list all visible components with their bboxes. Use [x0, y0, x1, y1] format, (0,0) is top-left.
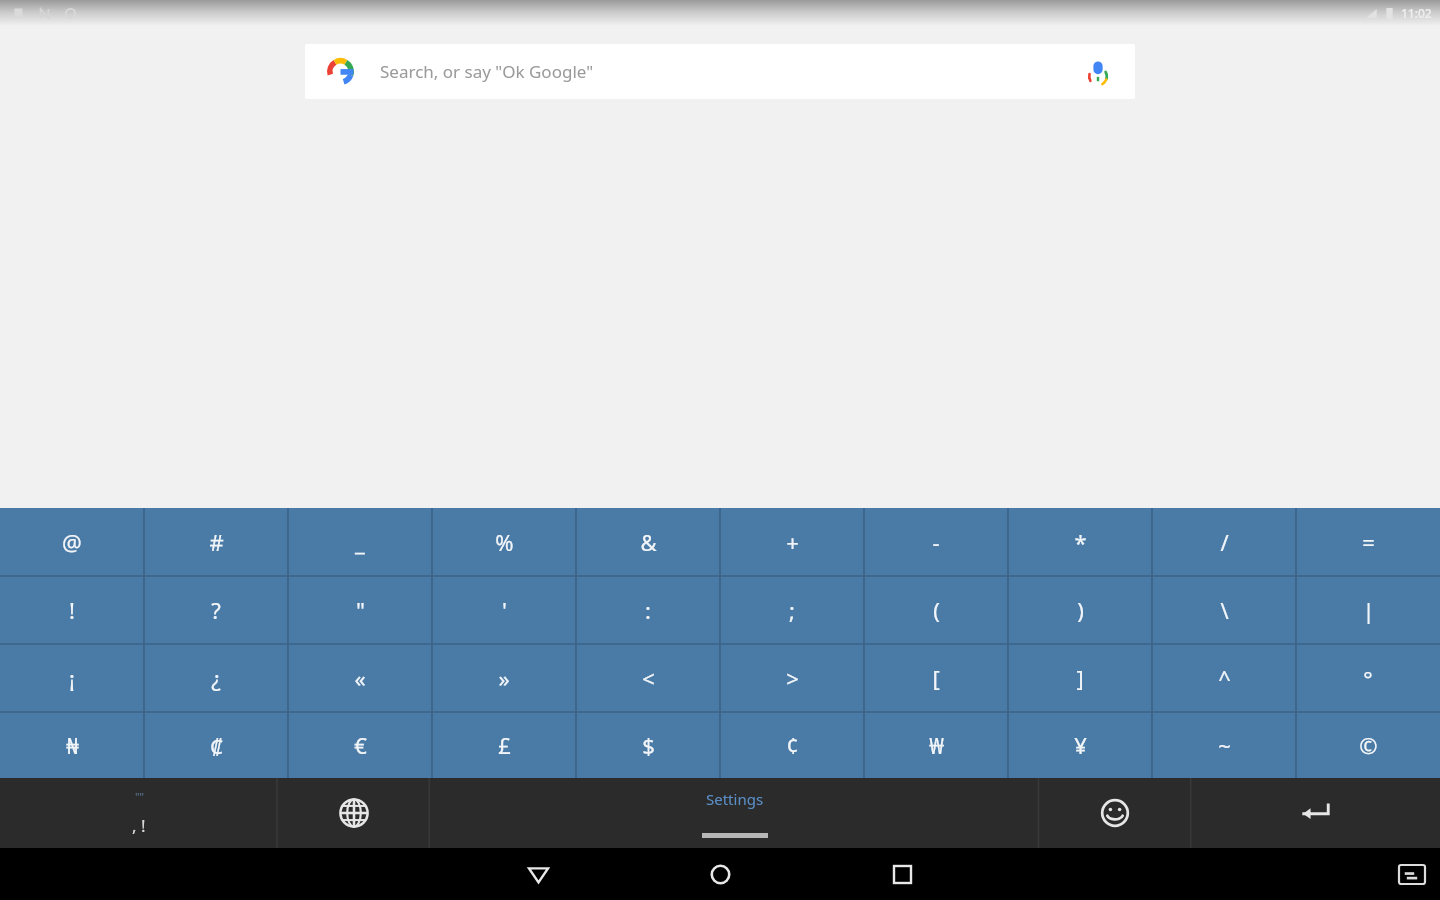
staticText: |: [1362, 595, 1375, 625]
button[interactable]: ~: [1152, 712, 1296, 778]
staticText: ¡: [69, 663, 75, 693]
staticText: €: [354, 730, 367, 760]
staticText: "": [135, 789, 144, 804]
button[interactable]: Emoji: [1039, 778, 1191, 848]
button[interactable]: ¥: [1008, 712, 1152, 778]
staticText: ?: [211, 595, 221, 625]
staticText: ¢: [786, 730, 799, 760]
button[interactable]: ": [288, 576, 432, 644]
button[interactable]: @: [0, 508, 144, 576]
button[interactable]: Search, or say "Ok Google": [305, 44, 1135, 99]
button[interactable]: ?: [144, 576, 288, 644]
button[interactable]: Switch keyboard: [1390, 852, 1434, 896]
button[interactable]: /: [1152, 508, 1296, 576]
button[interactable]: ¿: [144, 644, 288, 712]
staticText: ]: [1076, 663, 1084, 693]
staticText: *: [1074, 527, 1087, 557]
button[interactable]: <: [576, 644, 720, 712]
button[interactable]: ¡: [0, 644, 144, 712]
button[interactable]: °: [1296, 644, 1440, 712]
staticText: [: [932, 663, 940, 693]
button[interactable]: >: [720, 644, 864, 712]
button[interactable]: $: [576, 712, 720, 778]
button[interactable]: :: [576, 576, 720, 644]
button[interactable]: _: [288, 508, 432, 576]
staticText: »: [498, 663, 510, 693]
button[interactable]: ^: [1152, 644, 1296, 712]
staticText: ¥: [1074, 730, 1087, 760]
staticText: , !: [132, 814, 146, 837]
staticText: \: [1220, 595, 1229, 625]
staticText: ¿: [211, 663, 221, 693]
staticText: °: [1363, 663, 1373, 693]
button[interactable]: Recent apps: [876, 848, 928, 900]
staticText: ): [1077, 595, 1084, 625]
button[interactable]: ₩: [864, 712, 1008, 778]
button[interactable]: -: [864, 508, 1008, 576]
button[interactable]: ©: [1296, 712, 1440, 778]
button[interactable]: »: [432, 644, 576, 712]
staticText: &: [640, 527, 657, 557]
button[interactable]: =: [1296, 508, 1440, 576]
staticText: @: [62, 527, 82, 557]
button[interactable]: #: [144, 508, 288, 576]
staticText: :: [645, 595, 651, 625]
staticText: ;: [789, 595, 795, 625]
staticText: =: [1362, 527, 1375, 557]
button[interactable]: ₦: [0, 712, 144, 778]
button[interactable]: *: [1008, 508, 1152, 576]
button[interactable]: "": [0, 778, 278, 848]
staticText: ': [502, 595, 507, 625]
staticText: «: [354, 663, 366, 693]
staticText: $: [642, 730, 655, 760]
staticText: ₡: [210, 730, 223, 760]
button[interactable]: Settings: [430, 778, 1039, 848]
staticText: £: [498, 730, 511, 760]
staticText: %: [495, 527, 514, 557]
button[interactable]: €: [288, 712, 432, 778]
button[interactable]: Change keyboard language: [278, 778, 430, 848]
button[interactable]: +: [720, 508, 864, 576]
staticText: (: [933, 595, 940, 625]
button[interactable]: ]: [1008, 644, 1152, 712]
staticText: >: [786, 663, 799, 693]
button[interactable]: |: [1296, 576, 1440, 644]
button[interactable]: %: [432, 508, 576, 576]
staticText: -: [932, 527, 940, 557]
staticText: /: [1220, 527, 1229, 557]
staticText: #: [209, 527, 224, 557]
staticText: _: [355, 527, 365, 557]
button[interactable]: &: [576, 508, 720, 576]
staticText: <: [642, 663, 655, 693]
button[interactable]: «: [288, 644, 432, 712]
button[interactable]: !: [0, 576, 144, 644]
staticText: +: [786, 527, 799, 557]
staticText: ₦: [66, 730, 79, 760]
staticText: !: [69, 595, 75, 625]
button[interactable]: ¢: [720, 712, 864, 778]
staticText: ₩: [929, 730, 944, 760]
staticText: ©: [1359, 730, 1378, 760]
staticText: 11:02: [1401, 5, 1432, 21]
button[interactable]: Back: [512, 848, 564, 900]
button[interactable]: Home: [694, 848, 746, 900]
button[interactable]: ': [432, 576, 576, 644]
button[interactable]: Voice search: [1075, 49, 1121, 95]
button[interactable]: ₡: [144, 712, 288, 778]
button[interactable]: [: [864, 644, 1008, 712]
staticText: Search, or say "Ok Google": [380, 60, 594, 83]
button[interactable]: ;: [720, 576, 864, 644]
button[interactable]: ): [1008, 576, 1152, 644]
button[interactable]: (: [864, 576, 1008, 644]
button[interactable]: \: [1152, 576, 1296, 644]
staticText: ": [356, 595, 365, 625]
staticText: ~: [1218, 730, 1231, 760]
button[interactable]: £: [432, 712, 576, 778]
staticText: ^: [1218, 663, 1231, 693]
staticText: Settings: [706, 789, 764, 809]
button[interactable]: Enter: [1191, 778, 1440, 848]
